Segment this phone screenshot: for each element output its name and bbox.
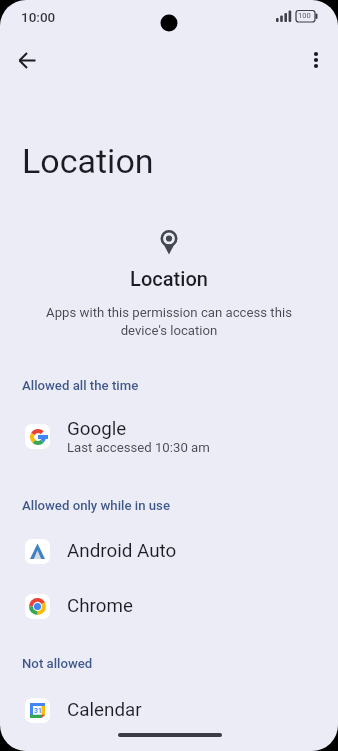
staticText: Google bbox=[67, 418, 127, 440]
button[interactable]: Chrome bbox=[0, 585, 338, 627]
staticText: Calendar bbox=[67, 699, 142, 721]
staticText: 100 bbox=[298, 11, 311, 20]
staticText: Android Auto bbox=[67, 540, 177, 562]
button[interactable] bbox=[300, 44, 332, 76]
staticText: Chrome bbox=[67, 595, 133, 617]
staticText: Location bbox=[0, 267, 338, 290]
staticText: 31 bbox=[34, 707, 42, 715]
button[interactable]: Android Auto bbox=[0, 530, 338, 572]
staticText: 10:00 bbox=[21, 9, 56, 25]
staticText: Apps with this permission can access thi… bbox=[0, 305, 338, 339]
button[interactable]: 31 bbox=[0, 689, 338, 731]
staticText: Not allowed bbox=[22, 656, 93, 671]
button[interactable] bbox=[11, 44, 43, 76]
staticText: Allowed all the time bbox=[22, 378, 139, 393]
staticText: Location bbox=[22, 141, 154, 181]
staticText: Last accessed 10:30 am bbox=[67, 440, 210, 455]
button[interactable]: Google bbox=[0, 415, 338, 457]
staticText: Allowed only while in use bbox=[22, 498, 171, 513]
